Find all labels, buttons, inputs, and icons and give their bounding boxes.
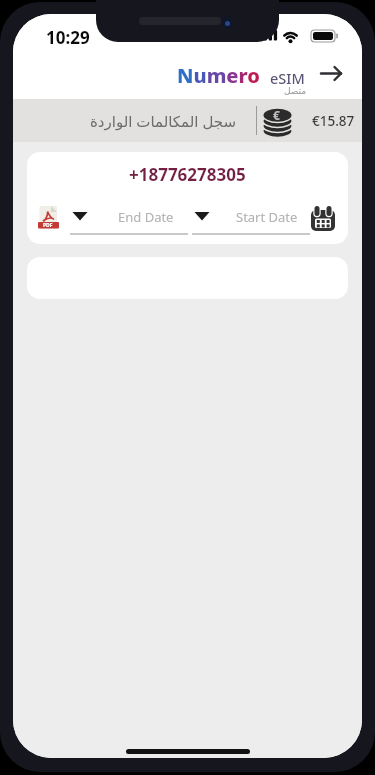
button[interactable]: Start Date xyxy=(217,207,317,227)
staticText: +18776278305 xyxy=(129,163,246,186)
staticText: Numero xyxy=(177,62,260,89)
staticText: سجل المكالمات الواردة xyxy=(90,111,237,131)
button[interactable]: PDF xyxy=(38,206,59,230)
staticText: Start Date xyxy=(236,208,298,226)
staticText: 10:29 xyxy=(46,26,90,49)
button[interactable]: End Date xyxy=(96,207,196,227)
staticText: € xyxy=(273,107,280,123)
button[interactable]: € xyxy=(262,103,294,138)
button[interactable] xyxy=(310,204,336,232)
button[interactable] xyxy=(318,63,346,84)
staticText: متصل xyxy=(284,86,307,96)
staticText: PDF xyxy=(43,222,53,229)
staticText: End Date xyxy=(118,208,174,226)
staticText: €15.87 xyxy=(312,112,355,130)
staticText: eSIM xyxy=(270,68,305,88)
